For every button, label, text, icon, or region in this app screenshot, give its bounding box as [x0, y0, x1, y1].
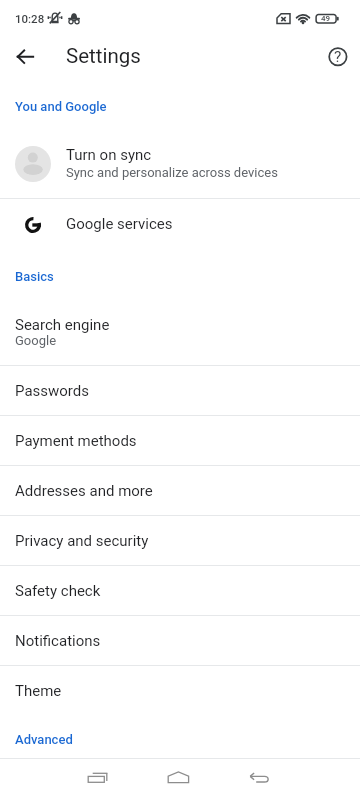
button[interactable]: Recent apps: [75, 762, 123, 798]
button[interactable]: Safety check: [0, 565, 360, 615]
staticText: 10:28: [15, 12, 45, 25]
button[interactable]: Passwords: [0, 365, 360, 415]
button[interactable]: Back: [9, 40, 42, 73]
button[interactable]: Help: [321, 40, 354, 73]
button[interactable]: Turn on sync: [0, 116, 360, 198]
staticText: ?: [334, 48, 342, 66]
button[interactable]: Notifications: [0, 615, 360, 665]
staticText: Search engine: [15, 316, 110, 334]
button[interactable]: Search engine: [0, 287, 360, 365]
staticText: Privacy and security: [15, 532, 149, 550]
staticText: Notifications: [15, 632, 101, 650]
staticText: Google: [15, 333, 57, 348]
staticText: Basics: [15, 269, 54, 284]
staticText: Turn on sync: [66, 146, 152, 164]
staticText: Advanced: [15, 732, 73, 747]
button[interactable]: Addresses and more: [0, 465, 360, 515]
staticText: 49: [321, 14, 331, 23]
button[interactable]: Theme: [0, 665, 360, 715]
button[interactable]: Privacy and security: [0, 515, 360, 565]
staticText: Addresses and more: [15, 482, 153, 500]
button[interactable]: Google services: [0, 198, 360, 250]
staticText: Safety check: [15, 582, 101, 600]
button[interactable]: Home: [155, 762, 203, 798]
button[interactable]: Back: [236, 762, 284, 798]
staticText: You and Google: [15, 99, 107, 114]
staticText: Settings: [66, 44, 141, 68]
staticText: Sync and personalize across devices: [66, 165, 278, 180]
staticText: Passwords: [15, 382, 89, 400]
staticText: Google services: [66, 215, 173, 233]
button[interactable]: Payment methods: [0, 415, 360, 465]
staticText: Payment methods: [15, 432, 137, 450]
staticText: Theme: [15, 682, 62, 700]
